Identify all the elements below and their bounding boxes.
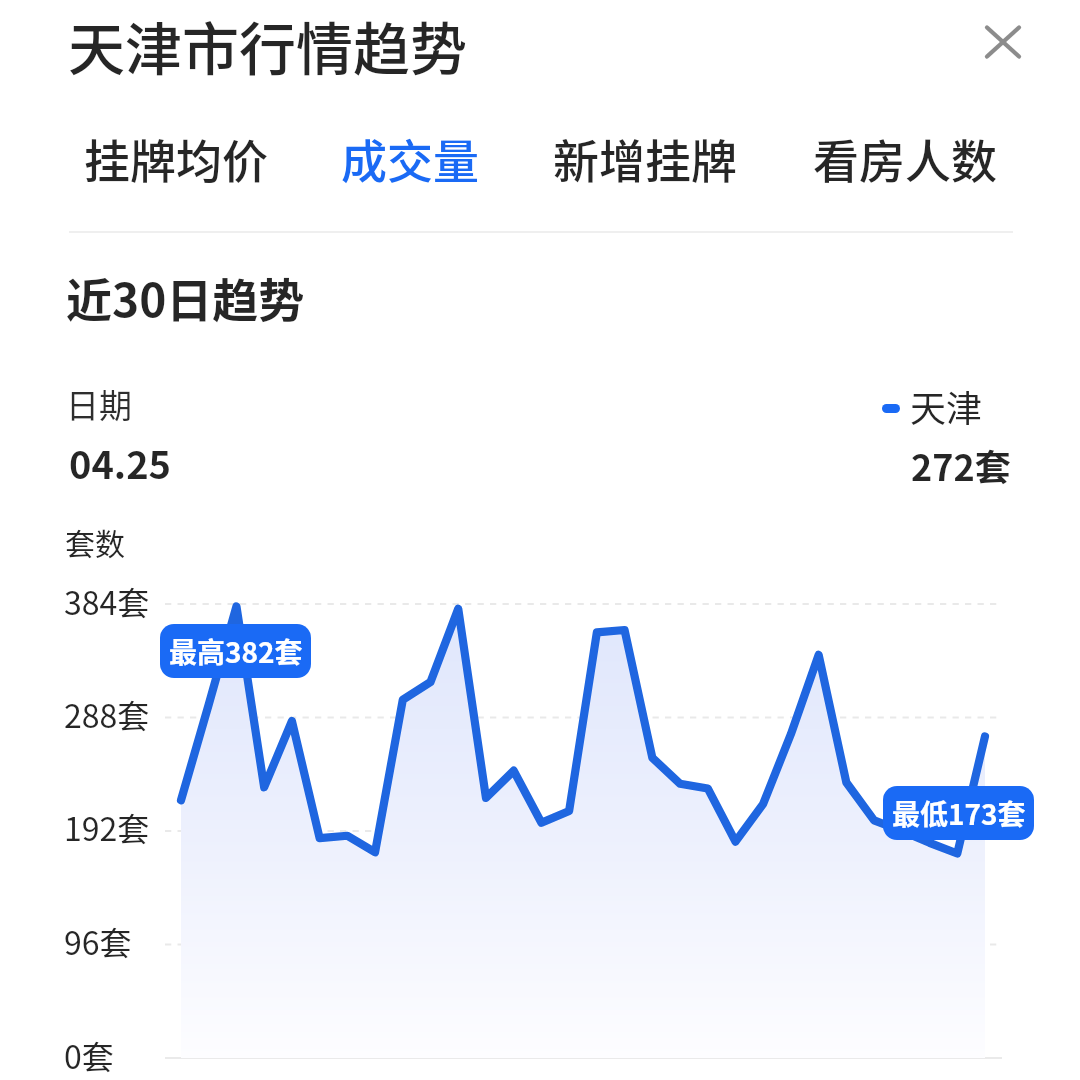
button[interactable]: Close [973, 12, 1033, 72]
staticText: 新增挂牌 [553, 125, 737, 192]
button[interactable]: 成交量 [327, 107, 493, 210]
staticText: 看房人数 [813, 125, 997, 192]
staticText: 挂牌均价 [84, 125, 268, 192]
staticText: 272套 [911, 439, 1011, 491]
button[interactable]: 看房人数 [799, 107, 1011, 210]
staticText: 近30日趋势 [66, 264, 305, 331]
staticText: 套数 [65, 520, 125, 563]
staticText: 384套 [64, 578, 150, 624]
staticText: 天津市行情趋势 [68, 4, 467, 87]
staticText: 天津 [910, 380, 983, 432]
staticText: 成交量 [341, 125, 479, 192]
staticText: 96套 [64, 918, 132, 964]
staticText: 日期 [66, 380, 132, 428]
staticText: 0套 [64, 1032, 114, 1078]
staticText: 最高382套 [169, 631, 303, 672]
button[interactable]: 挂牌均价 [70, 107, 282, 210]
staticText: 288套 [64, 691, 150, 737]
staticText: 192套 [64, 804, 150, 850]
staticText: 最低173套 [892, 793, 1026, 834]
button[interactable]: 新增挂牌 [539, 107, 751, 210]
staticText: 04.25 [69, 435, 172, 490]
